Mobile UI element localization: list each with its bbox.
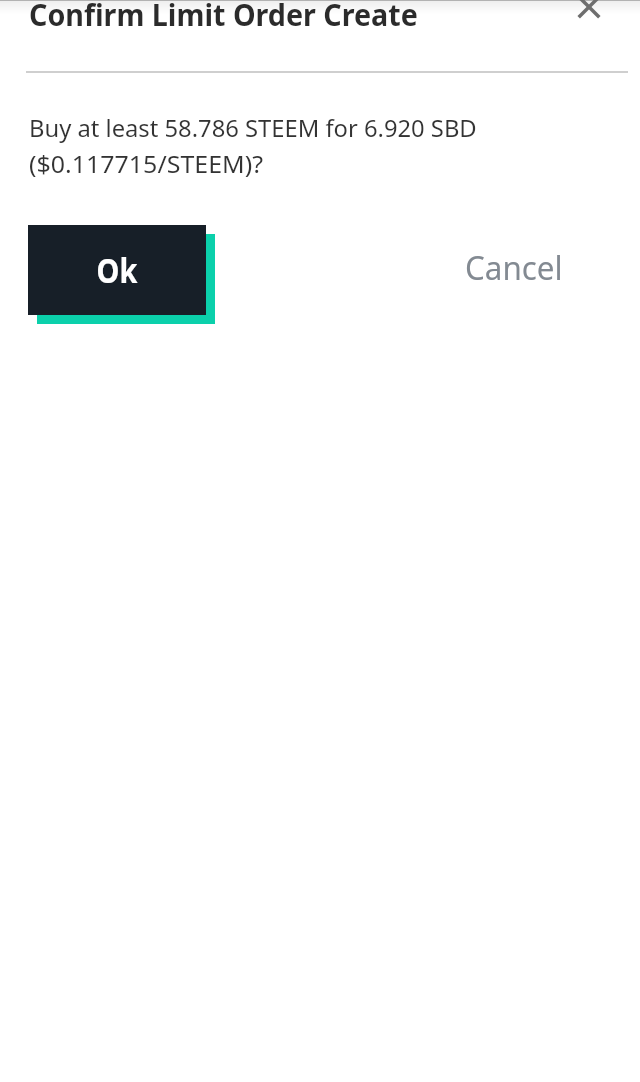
staticText: Ok xyxy=(97,247,137,293)
staticText: Confirm Limit Order Create xyxy=(29,0,418,35)
button[interactable]: Cancel xyxy=(447,232,581,304)
button[interactable]: Ok xyxy=(28,225,215,324)
button[interactable]: Close xyxy=(567,0,611,29)
staticText: Buy at least 58.786 STEEM for 6.920 SBD xyxy=(29,111,477,144)
staticText: ($0.117715/STEEM)? xyxy=(29,147,263,180)
staticText: Cancel xyxy=(465,246,563,290)
